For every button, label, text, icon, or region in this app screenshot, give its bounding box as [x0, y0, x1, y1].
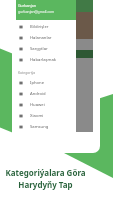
- staticText: Habarlaşmak: [30, 57, 57, 63]
- button[interactable]: Bildirişler: [16, 21, 76, 32]
- button[interactable]: Android: [16, 88, 76, 99]
- staticText: Iphone: [30, 80, 45, 86]
- staticText: Harydyňy Tap: [18, 179, 73, 190]
- staticText: Huawei: [30, 102, 45, 108]
- staticText: Xiaomi: [30, 113, 44, 119]
- button[interactable]: Huawei: [16, 99, 76, 110]
- button[interactable]: Halananlar: [16, 32, 76, 43]
- button[interactable]: Samsung: [16, 121, 76, 132]
- staticText: Samsung: [30, 124, 49, 130]
- staticText: Gurbanjan: [18, 3, 36, 8]
- staticText: Halananlar: [30, 35, 52, 41]
- staticText: Kategoriýalara Göra: [5, 167, 86, 178]
- button[interactable]: Xiaomi: [16, 110, 76, 121]
- staticText: gurbanjan@gmail.com: [18, 9, 55, 14]
- button[interactable]: Habarlaşmak: [16, 54, 76, 65]
- button[interactable]: Iphone: [16, 77, 76, 88]
- button[interactable]: Sargytlar: [16, 43, 76, 54]
- staticText: Kategoriýa: [18, 70, 36, 75]
- staticText: Bildirişler: [30, 24, 49, 30]
- staticText: Android: [30, 91, 46, 97]
- staticText: Sargytlar: [30, 46, 48, 52]
